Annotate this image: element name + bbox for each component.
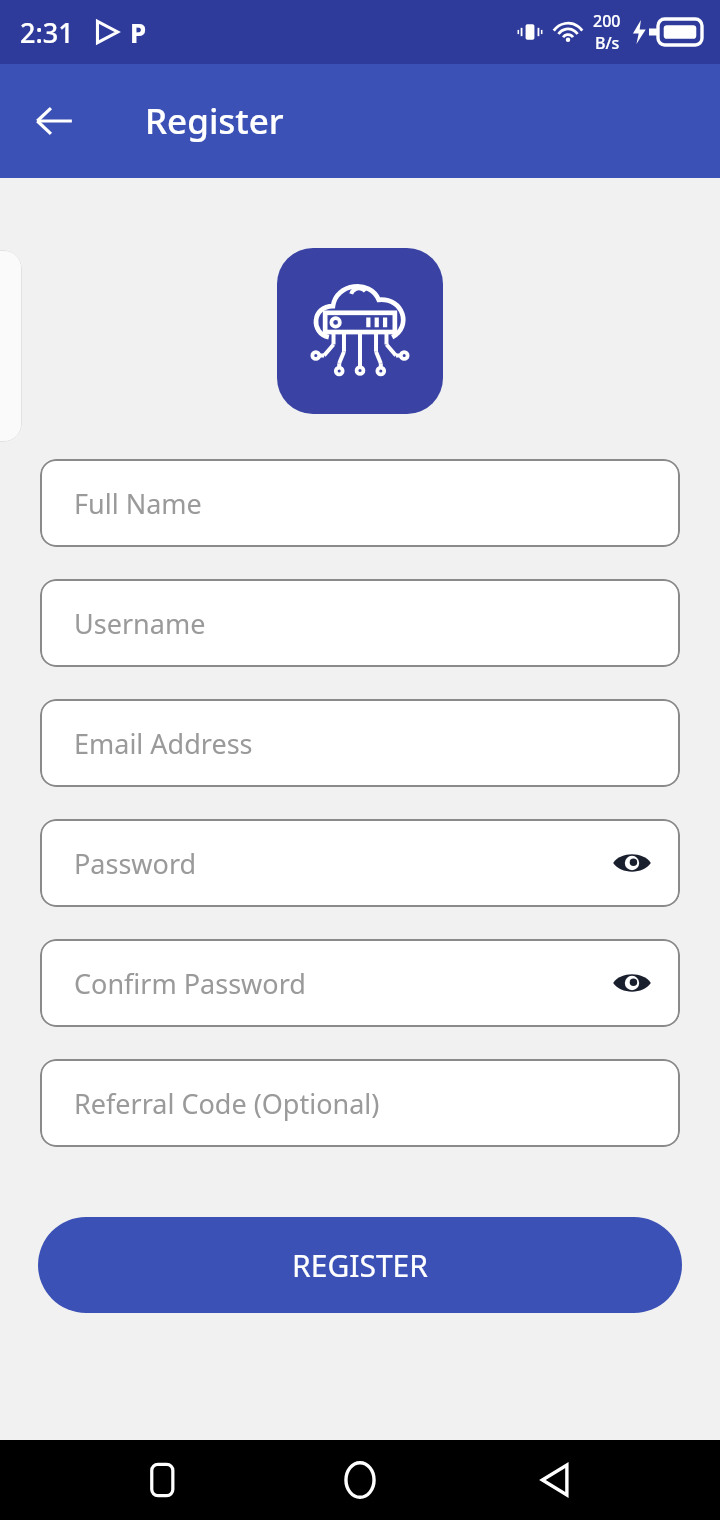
button[interactable]: Show password xyxy=(604,835,660,891)
staticText: Username xyxy=(74,605,206,642)
staticText: Password xyxy=(74,845,197,882)
staticText: Email Address xyxy=(74,725,253,762)
staticText: Referral Code (Optional) xyxy=(74,1085,380,1122)
button[interactable]: Home xyxy=(328,1448,392,1512)
staticText: Full Name xyxy=(74,485,202,522)
button[interactable]: Show password xyxy=(604,955,660,1011)
button[interactable]: Referral Code (Optional) xyxy=(40,1059,680,1147)
button[interactable]: Back xyxy=(524,1448,588,1512)
button[interactable]: Password xyxy=(40,819,680,907)
staticText: P xyxy=(130,15,147,50)
button[interactable]: Recent apps xyxy=(132,1448,196,1512)
staticText: REGISTER xyxy=(292,1245,428,1286)
button[interactable]: REGISTER xyxy=(38,1217,682,1313)
staticText: 2:31 xyxy=(20,14,74,51)
button[interactable]: Full Name xyxy=(40,459,680,547)
staticText: Confirm Password xyxy=(74,965,306,1002)
button[interactable]: Confirm Password xyxy=(40,939,680,1027)
staticText: 200 xyxy=(593,10,621,32)
staticText: Register xyxy=(145,97,284,145)
button[interactable]: Email Address xyxy=(40,699,680,787)
staticText: B/s xyxy=(595,32,620,54)
button[interactable]: Username xyxy=(40,579,680,667)
button[interactable]: Back xyxy=(18,85,90,157)
